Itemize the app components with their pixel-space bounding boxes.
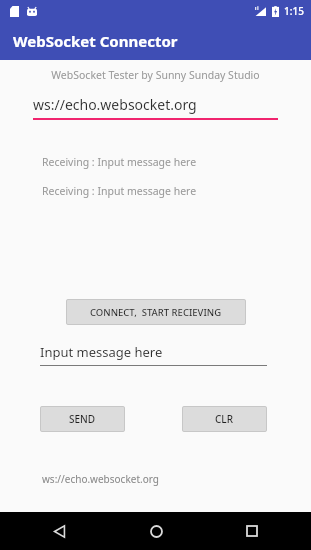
staticText: SEND (69, 412, 96, 426)
staticText: Receiving : Input message here (42, 155, 197, 169)
staticText: Receiving : Input message here (42, 184, 197, 198)
button[interactable]: SEND (40, 406, 125, 432)
button[interactable]: Recent apps (241, 520, 263, 542)
button[interactable]: Back (48, 520, 70, 542)
button[interactable]: CLR (182, 406, 267, 432)
button[interactable]: Home (145, 520, 167, 542)
staticText: ws://echo.websocket.org (33, 95, 197, 114)
staticText: WebSocket Tester by Sunny Sunday Studio (2, 68, 309, 82)
staticText: CLR (215, 412, 234, 426)
staticText: 1:15 (284, 4, 304, 18)
button[interactable]: Input message here (40, 343, 267, 366)
button[interactable]: CONNECT, START RECIEVING (66, 299, 246, 325)
staticText: WebSocket Connector (13, 31, 178, 51)
staticText: ws://echo.websocket.org (42, 472, 159, 486)
button[interactable]: ws://echo.websocket.org (33, 95, 278, 120)
staticText: Input message here (40, 343, 163, 361)
staticText: CONNECT, START RECIEVING (90, 306, 222, 319)
